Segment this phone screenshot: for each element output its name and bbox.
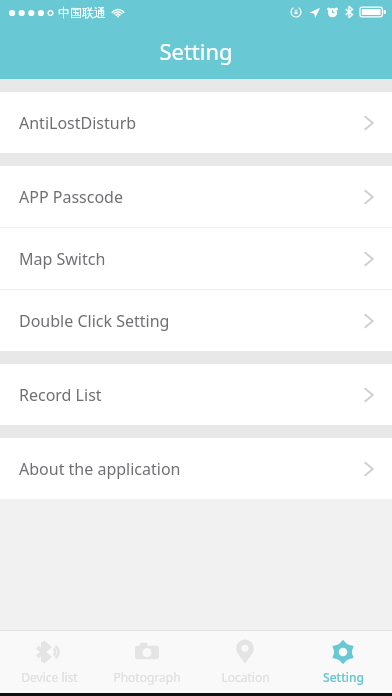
staticText: Photograph (113, 669, 181, 685)
button[interactable]: Location (196, 631, 294, 693)
staticText: APP Passcode (19, 186, 123, 208)
staticText: 中国联通 (58, 5, 106, 20)
staticText: About the application (19, 458, 181, 480)
button[interactable]: APP Passcode (0, 166, 392, 227)
button[interactable]: About the application (0, 438, 392, 499)
staticText: Map Switch (19, 248, 106, 270)
button[interactable]: Map Switch (0, 228, 392, 289)
staticText: Double Click Setting (19, 310, 170, 332)
staticText: AntiLostDisturb (19, 112, 137, 134)
staticText: Device list (21, 669, 78, 685)
button[interactable]: Device list (0, 631, 98, 693)
button[interactable]: Setting (294, 631, 392, 693)
button[interactable]: AntiLostDisturb (0, 92, 392, 153)
button[interactable]: Double Click Setting (0, 290, 392, 351)
button[interactable]: Photograph (98, 631, 196, 693)
staticText: Setting (159, 36, 233, 66)
staticText: Location (221, 669, 270, 685)
button[interactable]: Record List (0, 364, 392, 425)
staticText: Setting (323, 669, 364, 685)
staticText: Record List (19, 384, 102, 406)
